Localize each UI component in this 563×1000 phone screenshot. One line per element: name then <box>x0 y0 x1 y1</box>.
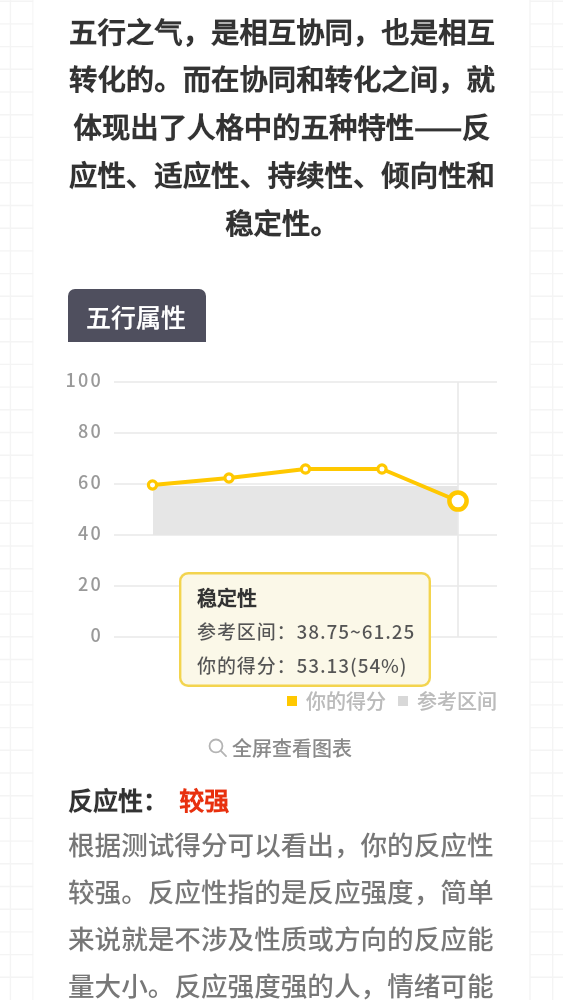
staticText: 0 <box>45 621 103 647</box>
other: 全屏查看图表 <box>208 738 227 757</box>
staticText: 80 <box>45 417 103 443</box>
staticText: 反应性： 较强 <box>68 781 230 817</box>
button[interactable]: 全屏查看图表 <box>204 730 356 765</box>
staticText: 你的得分：53.13(54%) <box>197 651 408 679</box>
button[interactable]: 五行属性 <box>68 289 206 342</box>
staticText: 20 <box>45 570 103 596</box>
staticText: 100 <box>45 366 103 392</box>
staticText: 全屏查看图表 <box>232 733 352 762</box>
staticText: 参考区间：38.75~61.25 <box>197 617 416 645</box>
staticText: 稳定性 <box>197 583 257 612</box>
staticText: 你的得分 <box>306 686 386 715</box>
staticText: 五行属性 <box>86 298 187 334</box>
staticText: 参考区间 <box>417 686 497 715</box>
staticText: 60 <box>45 468 103 494</box>
staticText: 五行之气，是相互协同，也是相互转化的。而在协同和转化之间，就体现出了人格中的五种… <box>68 10 496 242</box>
staticText: 根据测试得分可以看出，你的反应性较强。反应性指的是反应强度，简单来说就是不涉及性… <box>68 824 502 1000</box>
staticText: 40 <box>45 519 103 545</box>
